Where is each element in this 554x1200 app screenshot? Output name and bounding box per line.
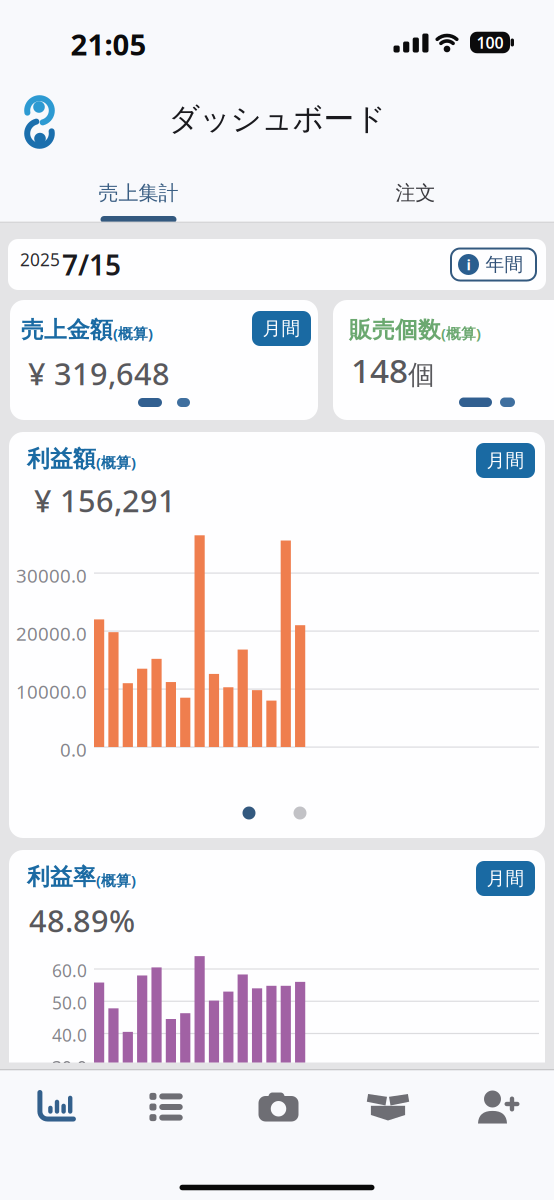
button[interactable] xyxy=(333,1076,443,1138)
button[interactable] xyxy=(222,1076,332,1138)
staticText: 利益額(概算) xyxy=(27,445,136,473)
staticText: 注文 xyxy=(395,181,435,205)
staticText: 2025 xyxy=(20,248,60,271)
button[interactable]: 月間 xyxy=(252,311,311,346)
staticText: 年間 xyxy=(485,253,523,276)
staticText: ダッシュボード xyxy=(168,100,385,138)
staticText: ¥ 319,648 xyxy=(28,353,170,394)
staticText: 20000.0 xyxy=(16,621,87,646)
staticText: 10000.0 xyxy=(16,679,87,704)
staticText: 販売個数(概算) xyxy=(349,316,481,344)
button[interactable]: 注文 xyxy=(277,163,554,223)
staticText: 7/15 xyxy=(62,246,121,283)
staticText: 月間 xyxy=(486,867,524,890)
staticText: 100 xyxy=(476,32,503,53)
staticText: 50.0 xyxy=(52,991,87,1014)
staticText: 40.0 xyxy=(52,1023,87,1046)
button[interactable]: 月間 xyxy=(476,443,535,478)
button[interactable] xyxy=(0,1076,110,1138)
staticText: 48.89% xyxy=(29,900,135,941)
staticText: ¥ 156,291 xyxy=(34,480,176,521)
staticText: 60.0 xyxy=(52,959,87,982)
button[interactable]: 売上集計 xyxy=(0,163,277,223)
button[interactable]: i xyxy=(451,248,536,280)
staticText: 売上金額(概算) xyxy=(21,316,153,344)
staticText: 21:05 xyxy=(70,24,146,63)
staticText: 月間 xyxy=(486,449,524,472)
staticText: 30000.0 xyxy=(16,563,87,588)
button[interactable] xyxy=(444,1076,554,1138)
staticText: i xyxy=(466,255,470,274)
staticText: 30.0 xyxy=(52,1056,87,1079)
button[interactable]: 月間 xyxy=(476,861,535,896)
staticText: 売上集計 xyxy=(98,181,178,205)
staticText: 148個 xyxy=(351,348,435,392)
button[interactable] xyxy=(111,1076,221,1138)
staticText: 0.0 xyxy=(60,737,87,762)
staticText: 利益率(概算) xyxy=(27,863,136,891)
staticText: 月間 xyxy=(262,317,300,340)
